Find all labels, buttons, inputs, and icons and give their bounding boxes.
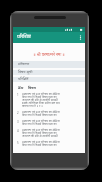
staticText: 2: [17, 111, 22, 115]
staticText: ॥ श्री परमात्मने नमः ॥: [33, 52, 65, 57]
staticText: इसके अतिरिक्त टीका सहित मूल पाठ: [22, 101, 60, 104]
button[interactable]: संस्करण: [13, 61, 85, 68]
staticText: विषय: [28, 86, 36, 91]
staticText: क्रम: [18, 86, 24, 91]
staticText: प्रस्तावना एवं ग्रन्थ परिचय का संक्षिप्त: [22, 119, 60, 122]
staticText: प्रस्तावना एवं ग्रन्थ परिचय का संक्षिप्त: [22, 92, 60, 95]
button[interactable]: 2: [13, 110, 85, 119]
staticText: प्रस्तावना एवं ग्रन्थ परिचय का संक्षिप्त: [22, 128, 60, 131]
staticText: संस्करण: [18, 62, 30, 67]
staticText: 3: [17, 120, 22, 124]
button[interactable]: 5: [13, 140, 85, 149]
button[interactable]: 4: [13, 128, 85, 140]
staticText: अध्ययन की दृष्टि से उपयोगी सामग्री: [22, 134, 58, 137]
staticText: 1: [17, 93, 22, 97]
staticText: प्रस्तावना एवं ग्रन्थ परिचय का संक्षिप्त: [22, 110, 60, 113]
staticText: 4: [17, 129, 22, 133]
staticText: 5: [17, 141, 22, 145]
button[interactable]: परिशिष्ट: [13, 77, 85, 82]
button[interactable]: विषय सूची: [13, 70, 85, 75]
staticText: दिया गया है जिसमें विषय वस्तु का: [22, 122, 57, 125]
staticText: अध्ययन की दृष्टि से उपयोगी सामग्री: [22, 98, 58, 101]
staticText: परिशिष्ट: [18, 77, 29, 82]
staticText: विषय सूची: [18, 70, 33, 75]
staticText: दिया गया है जिसमें विषय वस्तु का: [22, 131, 57, 134]
button[interactable]: 1: [13, 92, 85, 110]
staticText: कराया गया है ॥ १ ॥: [22, 104, 43, 107]
staticText: दिया गया है जिसमें विषय वस्तु का: [22, 95, 57, 98]
staticText: परिशिष्ट: [17, 34, 31, 41]
staticText: प्रस्तावना एवं ग्रन्थ परिचय का संक्षिप्त: [22, 140, 60, 143]
button[interactable]: More options: [76, 32, 85, 43]
staticText: दिया गया है जिसमें विषय वस्तु का: [22, 143, 57, 146]
staticText: दिया गया है जिसमें विषय वस्तु का: [22, 113, 57, 116]
button[interactable]: 3: [13, 119, 85, 128]
